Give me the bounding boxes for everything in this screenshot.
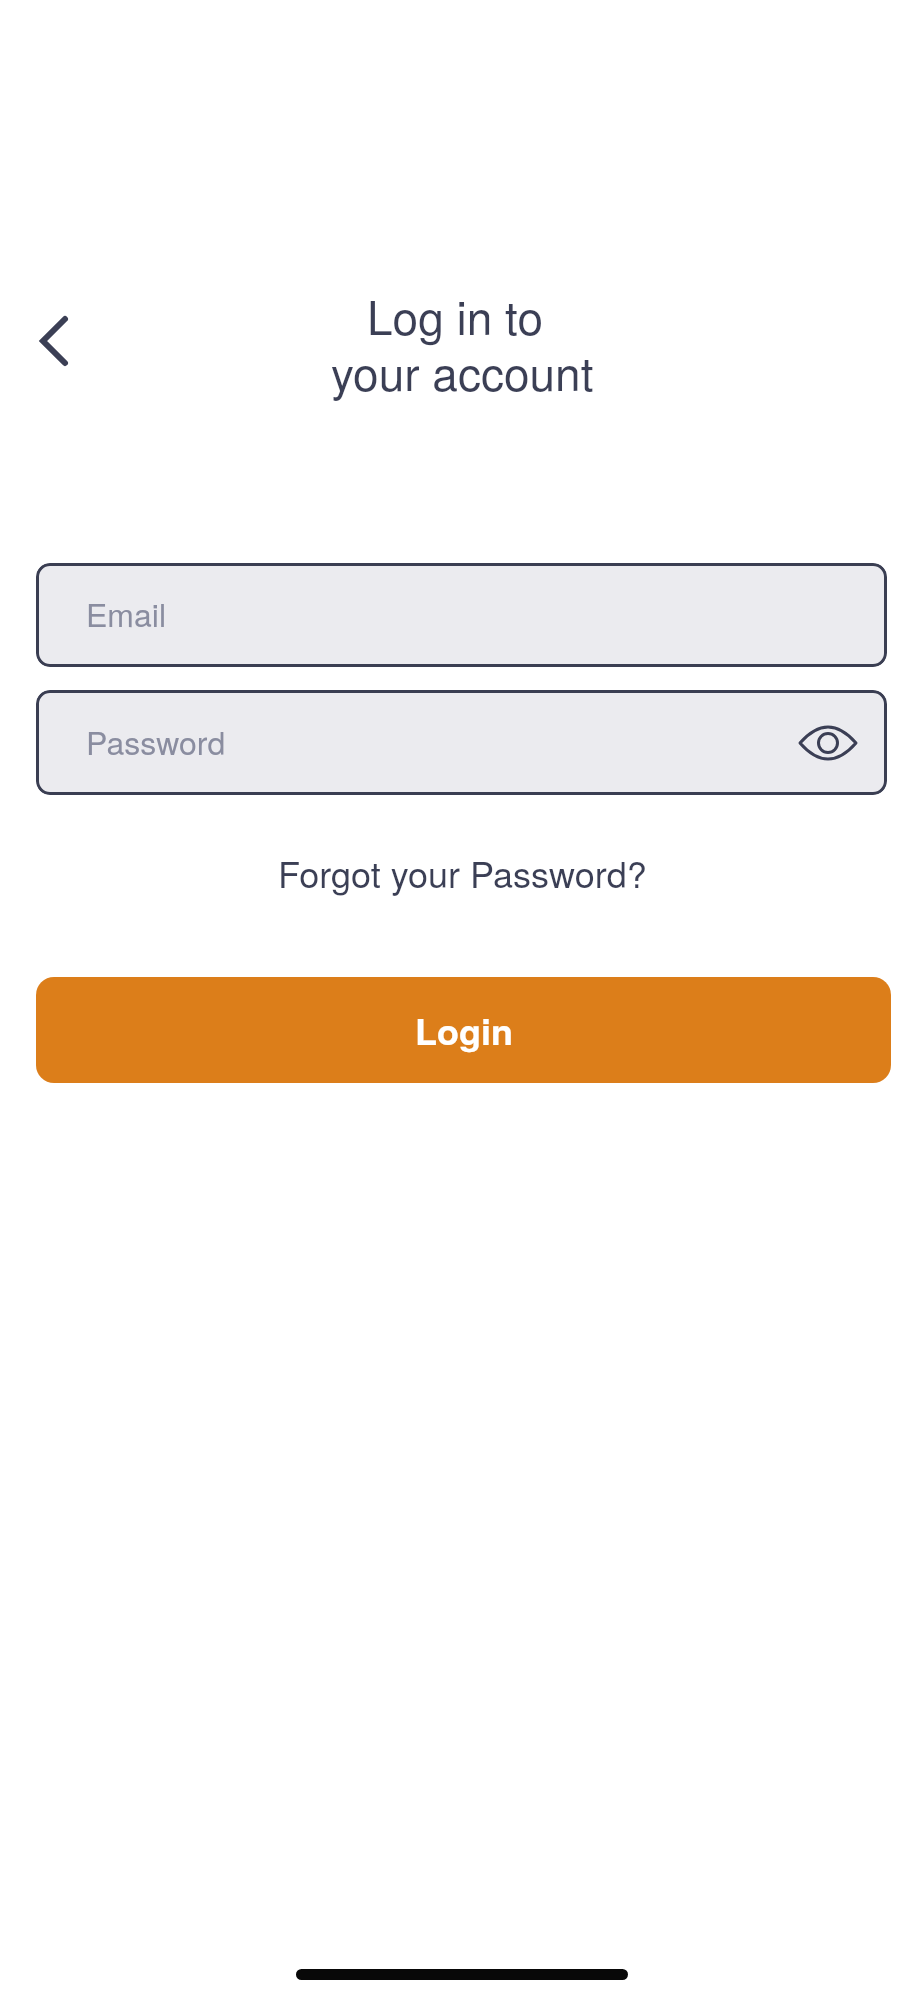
- button[interactable]: Forgot your Password?: [278, 847, 647, 899]
- staticText: Log in to: [367, 282, 543, 348]
- button[interactable]: [28, 302, 80, 380]
- staticText: Login: [415, 1004, 513, 1056]
- staticText: Forgot your Password?: [278, 847, 647, 899]
- staticText: Email: [86, 590, 167, 636]
- button[interactable]: Email: [36, 563, 887, 667]
- staticText: Password: [86, 718, 226, 764]
- button[interactable]: Password: [36, 690, 887, 795]
- button[interactable]: [796, 715, 860, 771]
- button[interactable]: Login: [36, 977, 891, 1083]
- staticText: your account: [331, 338, 594, 404]
